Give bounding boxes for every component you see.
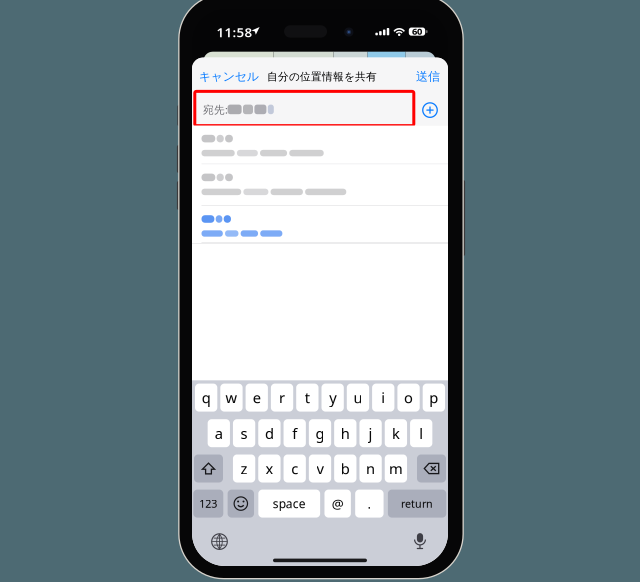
staticText: e	[253, 388, 261, 407]
staticText: n	[366, 459, 375, 478]
button[interactable]	[417, 454, 446, 482]
staticText: 60	[412, 25, 422, 37]
button[interactable]: r	[271, 384, 293, 412]
staticText: c	[291, 459, 298, 478]
button[interactable]: v	[309, 454, 331, 482]
button[interactable]: x	[258, 454, 280, 482]
button[interactable]: t	[296, 384, 318, 412]
button[interactable]	[194, 454, 223, 482]
button[interactable]: l	[410, 419, 432, 447]
staticText: s	[241, 423, 248, 443]
button[interactable]: @	[324, 490, 351, 518]
button[interactable]: a	[208, 419, 230, 447]
staticText: 自分の位置情報を共有	[267, 70, 377, 83]
staticText: k	[392, 423, 400, 443]
button[interactable]: .	[355, 490, 384, 518]
button[interactable]: b	[334, 454, 356, 482]
button[interactable]: w	[220, 384, 243, 412]
staticText: 11:58	[217, 23, 253, 41]
button[interactable]: 123	[193, 490, 223, 518]
staticText: i	[381, 388, 385, 407]
button[interactable]: k	[385, 419, 407, 447]
staticText: t	[305, 388, 310, 407]
button[interactable]: q	[195, 384, 217, 412]
button[interactable]: o	[397, 384, 420, 412]
staticText: r	[279, 388, 285, 407]
staticText: q	[202, 388, 211, 407]
button[interactable]: c	[284, 454, 306, 482]
button[interactable]: s	[233, 419, 255, 447]
staticText: return	[401, 496, 433, 511]
button[interactable]: u	[347, 384, 369, 412]
button[interactable]: f	[283, 419, 306, 447]
staticText: m	[389, 459, 403, 478]
staticText: @	[332, 495, 344, 512]
staticText: a	[215, 423, 223, 443]
button[interactable]: j	[359, 419, 382, 447]
button[interactable]: n	[359, 454, 382, 482]
staticText: g	[315, 423, 324, 443]
button[interactable]: p	[423, 384, 445, 412]
staticText: .	[367, 495, 371, 512]
staticText: j	[369, 423, 373, 443]
staticText: u	[353, 388, 362, 407]
staticText: l	[419, 423, 423, 443]
button[interactable]: g	[309, 419, 331, 447]
staticText: 送信	[416, 69, 440, 84]
staticText: 宛先:	[203, 102, 228, 117]
button[interactable]: i	[372, 384, 394, 412]
button[interactable]: m	[385, 454, 407, 482]
staticText: y	[329, 388, 336, 407]
button[interactable]: e	[246, 384, 268, 412]
staticText: f	[292, 423, 297, 443]
button[interactable]: 送信	[406, 68, 440, 84]
button[interactable]: space	[258, 490, 320, 518]
button[interactable]	[192, 126, 448, 164]
staticText: d	[265, 423, 274, 443]
button[interactable]: y	[321, 384, 344, 412]
staticText: space	[273, 496, 306, 511]
staticText: z	[241, 459, 248, 478]
staticText: 123	[199, 496, 217, 511]
staticText: w	[225, 388, 237, 407]
staticText: キャンセル	[199, 69, 259, 84]
staticText: x	[265, 459, 273, 478]
staticText: o	[404, 388, 413, 407]
button[interactable]	[228, 490, 254, 518]
button[interactable]: キャンセル	[199, 69, 265, 84]
button[interactable]: Dictate	[414, 533, 426, 549]
button[interactable]	[192, 206, 448, 243]
button[interactable]	[192, 164, 448, 206]
button[interactable]: d	[258, 419, 280, 447]
button[interactable]: return	[388, 490, 446, 518]
staticText: b	[341, 459, 350, 478]
button[interactable]: Switch keyboard	[212, 534, 227, 549]
staticText: v	[316, 459, 323, 478]
staticText: p	[429, 388, 438, 407]
button[interactable]: h	[334, 419, 356, 447]
staticText: h	[341, 423, 350, 443]
button[interactable]: Add contact	[423, 103, 437, 117]
button[interactable]: z	[233, 454, 255, 482]
